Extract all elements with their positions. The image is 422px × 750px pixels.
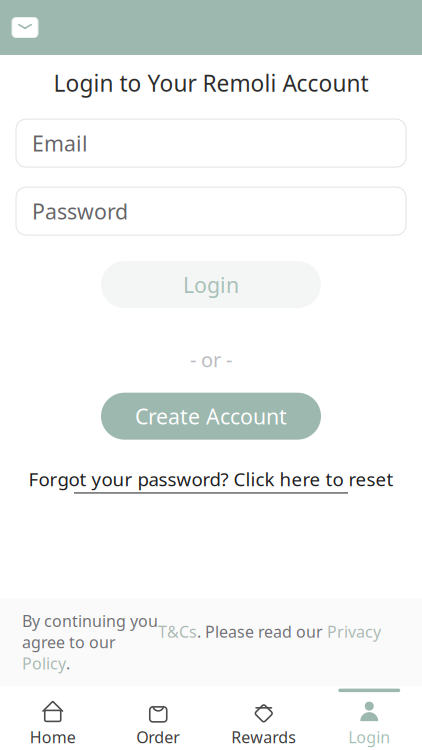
staticText: Login bbox=[183, 270, 239, 299]
button[interactable]: Rewards bbox=[211, 686, 316, 750]
staticText: Order bbox=[136, 726, 180, 748]
staticText: T&Cs bbox=[158, 621, 197, 642]
button[interactable]: Login bbox=[101, 261, 321, 308]
button[interactable]: Login bbox=[316, 686, 422, 750]
button[interactable]: Password bbox=[16, 187, 406, 235]
button[interactable]: T&Cs bbox=[158, 621, 197, 642]
button[interactable]: Home bbox=[0, 686, 105, 750]
staticText: Rewards bbox=[231, 726, 296, 748]
staticText: Email bbox=[32, 129, 88, 157]
staticText: Home bbox=[30, 726, 76, 748]
button[interactable]: Create Account bbox=[101, 393, 321, 440]
staticText: . Please read our bbox=[197, 621, 327, 642]
staticText: Password bbox=[32, 197, 128, 225]
button[interactable]: Messages bbox=[0, 15, 40, 39]
staticText: . bbox=[66, 653, 70, 674]
button[interactable]: Policy bbox=[22, 653, 66, 674]
button[interactable]: Forgot your password? Click here to rese… bbox=[28, 467, 393, 493]
staticText: Policy bbox=[22, 653, 66, 674]
staticText: Privacy bbox=[327, 621, 381, 642]
button[interactable]: Email bbox=[16, 119, 406, 167]
button[interactable]: Privacy bbox=[327, 621, 381, 642]
staticText: By continuing you agree to our bbox=[22, 610, 158, 653]
staticText: - or - bbox=[190, 346, 232, 373]
staticText: Login bbox=[348, 726, 390, 748]
staticText: Create Account bbox=[135, 402, 287, 430]
button[interactable]: Order bbox=[105, 686, 211, 750]
staticText: Login to Your Remoli Account bbox=[53, 68, 368, 98]
staticText: Forgot your password? Click here to rese… bbox=[28, 467, 393, 491]
